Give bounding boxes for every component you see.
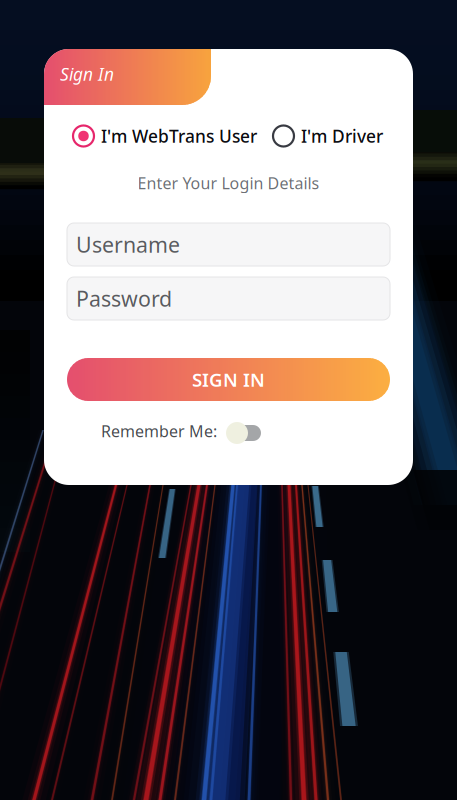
staticText: I'm WebTrans User xyxy=(101,124,257,147)
button[interactable]: Remember Me xyxy=(226,417,264,445)
staticText: Sign In xyxy=(60,62,114,85)
button[interactable]: Sign In xyxy=(44,49,211,105)
button[interactable]: SIGN IN xyxy=(67,358,390,401)
staticText: Password xyxy=(76,284,172,313)
staticText: SIGN IN xyxy=(192,367,265,392)
staticText: I'm Driver xyxy=(301,124,383,147)
staticText: Remember Me: xyxy=(101,420,217,442)
button[interactable]: I'm Driver xyxy=(272,123,383,149)
staticText: Username xyxy=(76,230,180,259)
button[interactable]: I'm WebTrans User xyxy=(72,123,257,149)
staticText: Enter Your Login Details xyxy=(137,172,319,194)
